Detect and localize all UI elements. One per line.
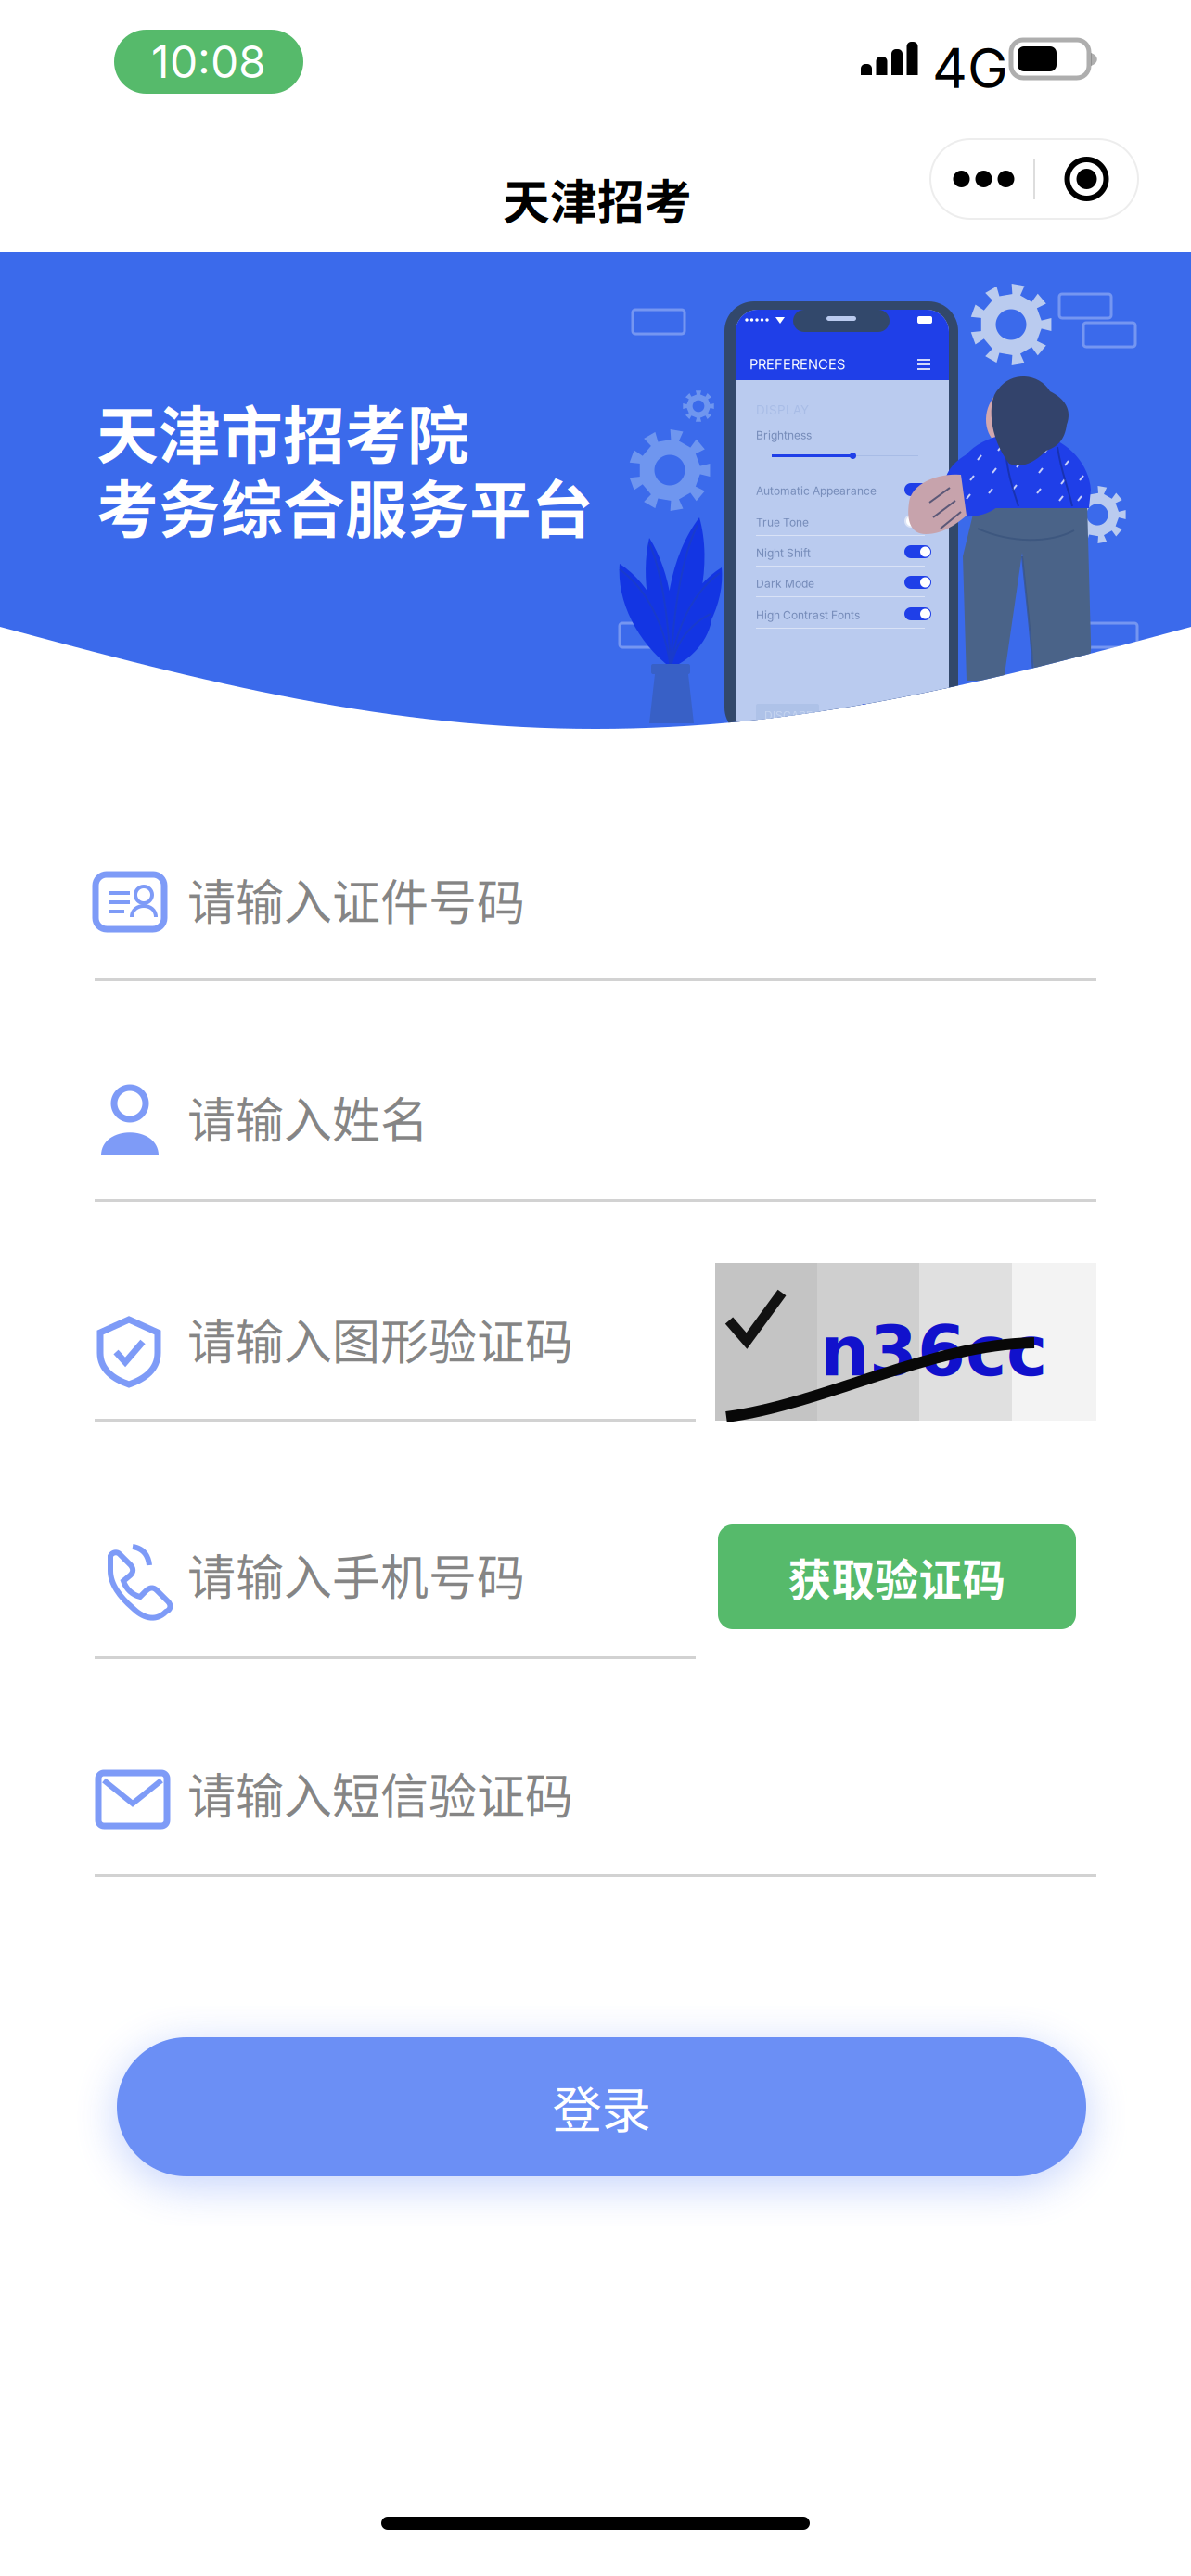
staticText: DISPLAY xyxy=(756,402,809,417)
button[interactable]: 登录 xyxy=(117,2037,1086,2176)
staticText: 天津招考 xyxy=(503,165,692,233)
staticText: DISCARD xyxy=(764,708,814,722)
staticText: 天津市招考院 xyxy=(96,387,469,476)
staticText: 请输入证件号码 xyxy=(187,864,525,934)
button[interactable]: 获取验证码 xyxy=(718,1524,1076,1629)
button[interactable]: Close mini program xyxy=(1035,139,1138,219)
staticText: True Tone xyxy=(756,516,809,529)
staticText: 请输入姓名 xyxy=(187,1082,429,1152)
staticText: 考务综合服务平台 xyxy=(96,461,594,550)
staticText: 登录 xyxy=(552,2071,651,2143)
staticText: 获取验证码 xyxy=(788,1546,1006,1608)
staticText: Brightness xyxy=(756,428,812,442)
staticText: PREFERENCES xyxy=(749,356,845,372)
staticText: 请输入手机号码 xyxy=(187,1539,525,1609)
staticText: Dark Mode xyxy=(756,577,814,590)
staticText: Night Shift xyxy=(756,546,811,560)
staticText: n36cc xyxy=(820,1311,1047,1392)
staticText: 4G xyxy=(932,35,1008,101)
staticText: Automatic Appearance xyxy=(756,484,877,497)
staticText: 请输入图形验证码 xyxy=(187,1304,573,1374)
button[interactable]: More options xyxy=(930,139,1033,219)
staticText: 10:08 xyxy=(151,35,266,89)
staticText: High Contrast Fonts xyxy=(756,608,860,622)
staticText: 请输入短信验证码 xyxy=(187,1758,573,1828)
